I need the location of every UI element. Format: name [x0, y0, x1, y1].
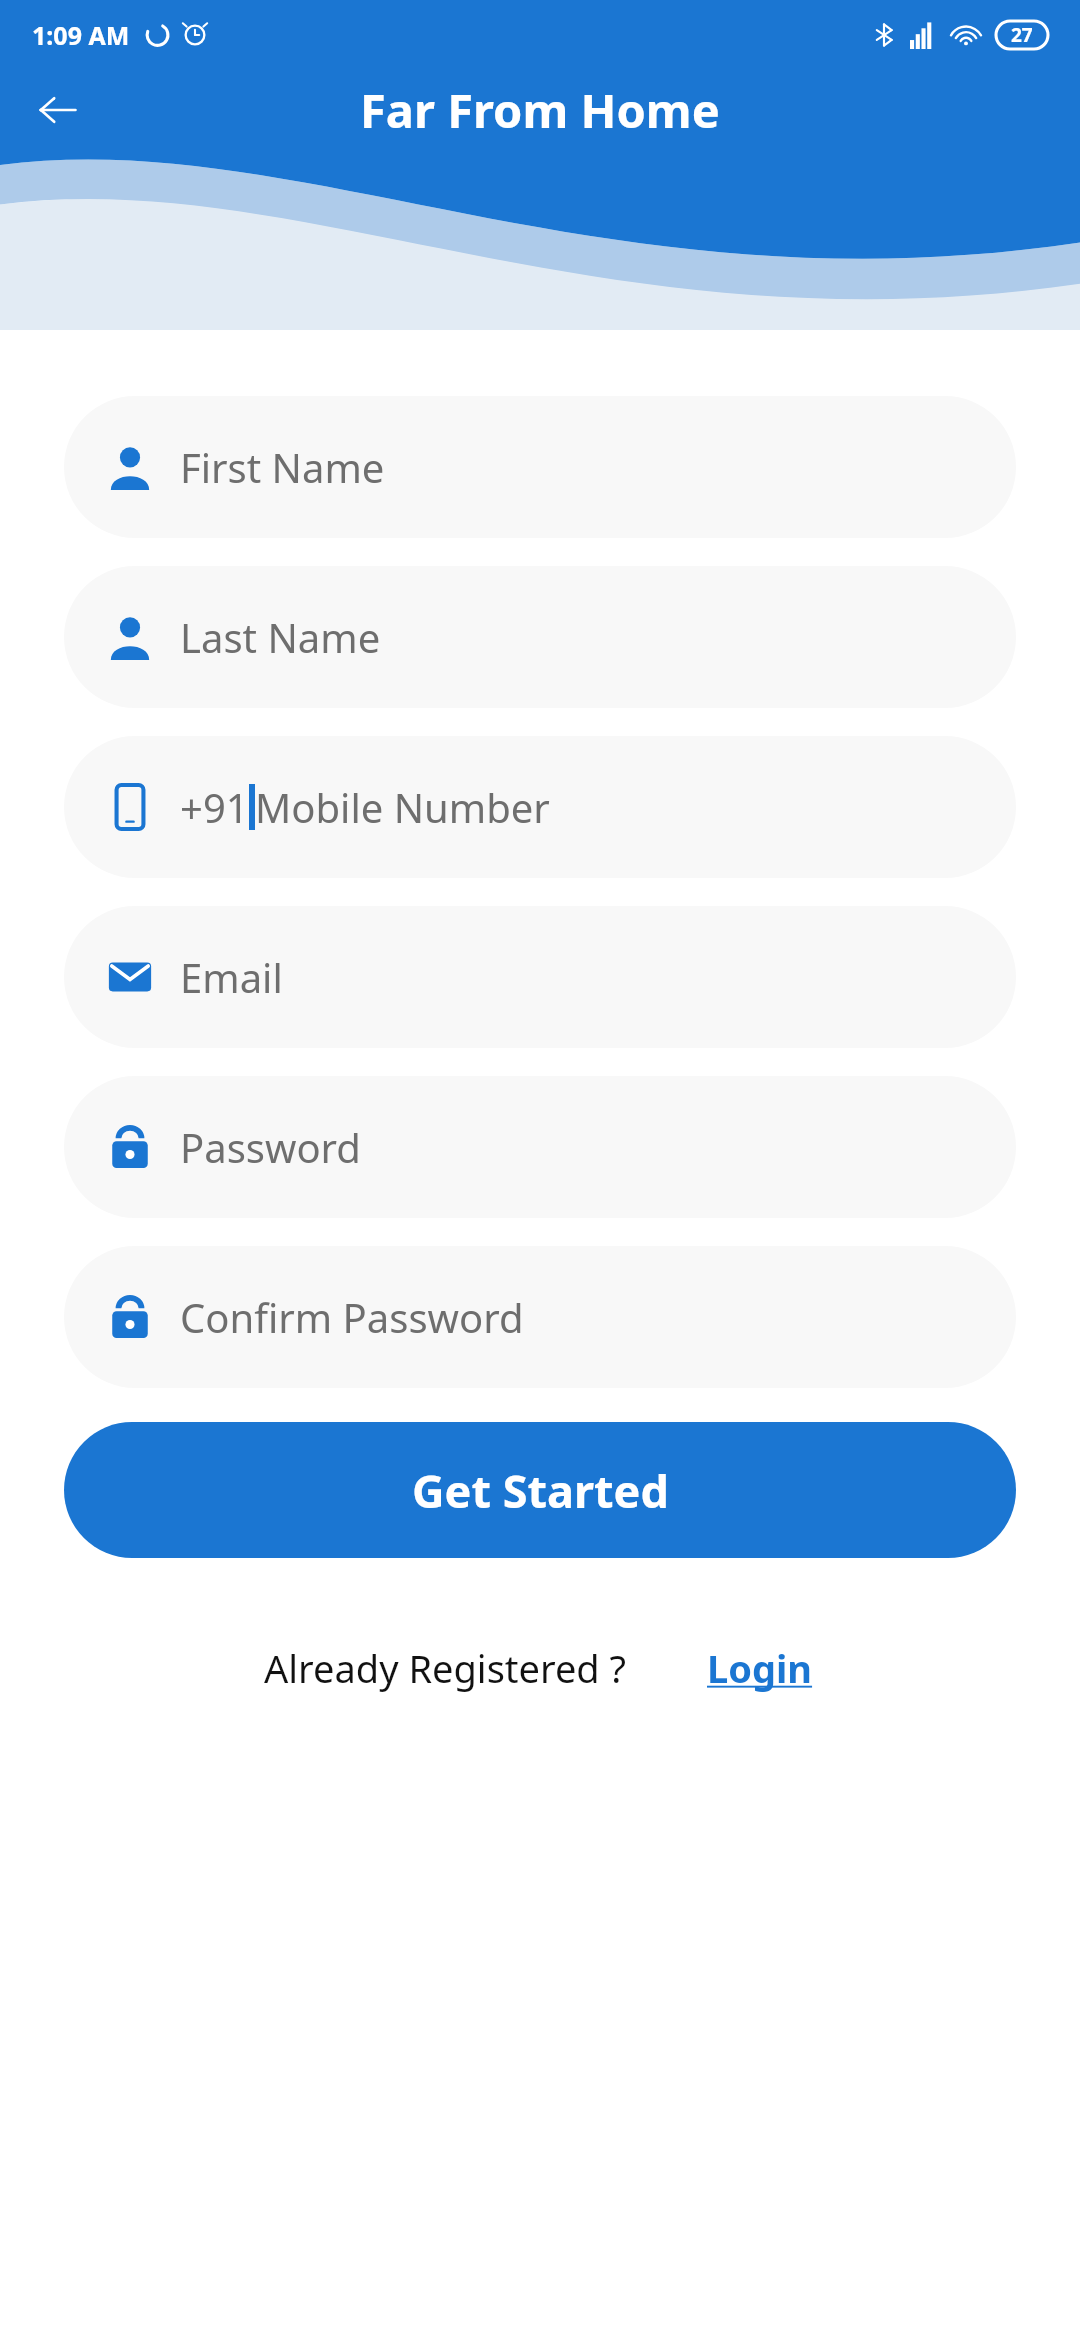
button[interactable]: Email	[64, 906, 1016, 1048]
button[interactable]: Back	[26, 78, 90, 142]
staticText: +91	[180, 780, 249, 834]
button[interactable]: First Name	[64, 396, 1016, 538]
staticText: Far From Home	[360, 78, 720, 142]
staticText: Password	[180, 1120, 361, 1174]
staticText: First Name	[180, 440, 385, 494]
staticText: Last Name	[180, 610, 381, 664]
staticText: Email	[180, 950, 283, 1004]
button[interactable]: Get Started	[64, 1422, 1016, 1558]
button[interactable]: +91	[64, 736, 1016, 878]
button[interactable]: Last Name	[64, 566, 1016, 708]
staticText: Login	[707, 1642, 813, 1694]
staticText: Mobile Number	[255, 780, 550, 834]
staticText: Get Started	[412, 1460, 669, 1521]
button[interactable]: Confirm Password	[64, 1246, 1016, 1388]
button[interactable]: Password	[64, 1076, 1016, 1218]
staticText: Confirm Password	[180, 1290, 524, 1344]
staticText: 1:09 AM	[32, 18, 130, 52]
button[interactable]: Login	[703, 1638, 817, 1698]
staticText: 27	[1011, 22, 1033, 48]
staticText: Already Registered ?	[264, 1642, 627, 1694]
